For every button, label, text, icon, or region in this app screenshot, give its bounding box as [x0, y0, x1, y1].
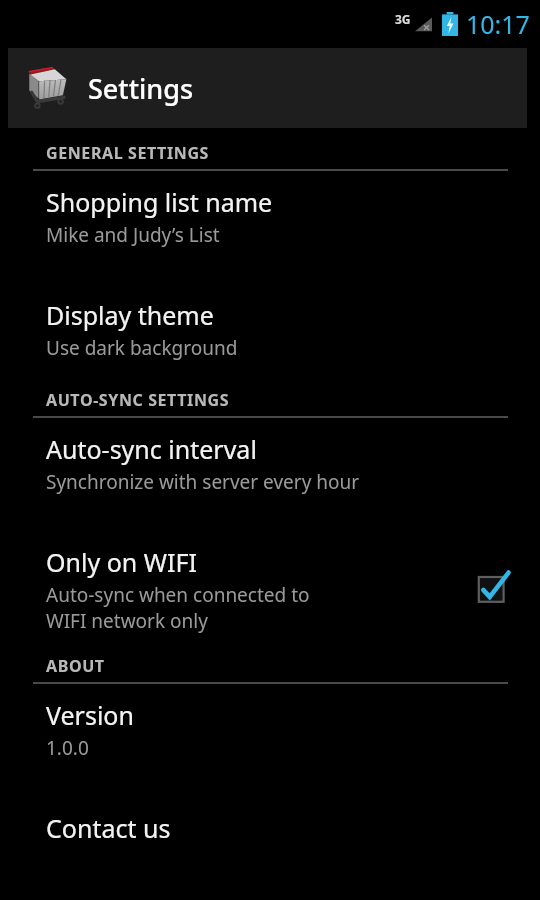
staticText: Auto-sync interval — [46, 432, 257, 466]
button[interactable]: Shopping list name — [0, 171, 540, 254]
button[interactable]: Auto-sync interval — [0, 418, 540, 501]
staticText: 10:17 — [466, 7, 530, 41]
staticText: GENERAL SETTINGS — [46, 142, 209, 164]
staticText: Display theme — [46, 298, 214, 332]
staticText: Version — [46, 698, 134, 732]
staticText: Synchronize with server every hour — [46, 469, 360, 495]
button[interactable]: Only on WIFI — [0, 531, 540, 639]
staticText: 3G — [395, 11, 411, 27]
staticText: Shopping list name — [46, 185, 273, 219]
button[interactable]: Display theme — [0, 284, 540, 367]
staticText: Auto-sync when connected to WIFI network… — [46, 582, 310, 633]
staticText: Use dark background — [46, 335, 238, 361]
staticText: AUTO-SYNC SETTINGS — [46, 389, 230, 411]
staticText: Settings — [88, 70, 194, 107]
button[interactable]: Contact us — [0, 797, 540, 851]
staticText: Mike and Judy’s List — [46, 222, 220, 248]
staticText: Only on WIFI — [46, 545, 197, 579]
staticText: ABOUT — [46, 655, 105, 677]
staticText: Contact us — [46, 811, 171, 845]
button[interactable]: Version — [0, 684, 540, 767]
staticText: 1.0.0 — [46, 735, 89, 761]
button[interactable]: Only on WIFI toggle — [472, 567, 516, 611]
